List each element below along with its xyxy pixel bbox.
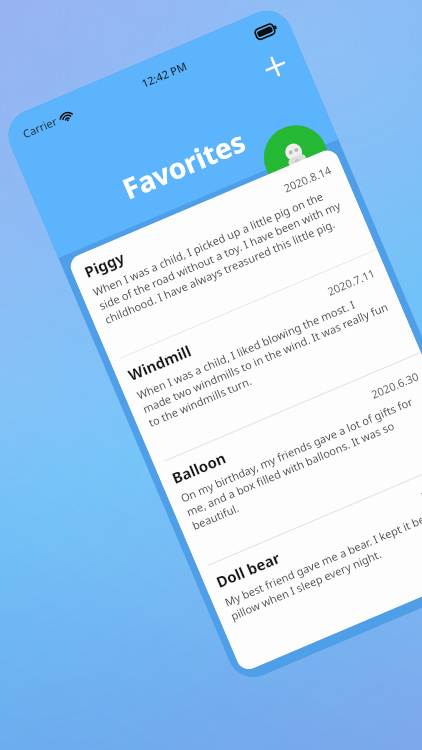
staticText: 2020.6.30 [369,368,421,402]
staticText: Piggy [81,247,128,282]
staticText: When I was a child, I picked up a little… [91,182,353,327]
button[interactable]: Profile [254,115,338,199]
button[interactable]: Add [251,43,298,90]
button[interactable]: Balloon [154,353,422,569]
staticText: Balloon [169,447,229,488]
staticText: 2020.7.11 [325,265,377,299]
staticText: 2020.8.14 [281,162,333,195]
staticText: When I was a child, I liked blowing the … [134,285,397,430]
staticText: My best friend gave me a bear. I kept it… [222,492,422,623]
staticText: Doll bear [213,547,283,592]
staticText: 12:42 PM [139,58,189,91]
staticText: 2020.6.2 [418,472,422,503]
button[interactable]: Doll bear [198,457,422,673]
button[interactable]: Piggy [67,146,377,362]
staticText: Carrier [20,113,59,141]
staticText: Favorites [117,122,251,207]
button[interactable]: Windmill [110,250,421,465]
staticText: Windmill [125,340,195,385]
staticText: On my birthday, my friends gave a lot of… [178,388,422,533]
